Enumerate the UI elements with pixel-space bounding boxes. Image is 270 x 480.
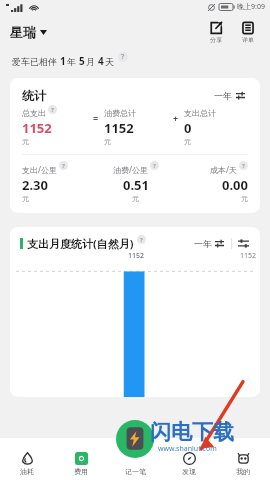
button[interactable]: 星瑞	[10, 22, 47, 42]
staticText: 闪电下载	[150, 419, 234, 445]
staticText: 元	[22, 194, 29, 203]
button[interactable]: 详单	[236, 21, 260, 44]
staticText: ?	[140, 236, 143, 244]
staticText: 0	[184, 119, 192, 137]
button[interactable]: 记一笔	[116, 420, 154, 458]
staticText: 4	[98, 54, 104, 68]
staticText: 元	[241, 194, 248, 203]
staticText: 成本/天	[210, 164, 237, 175]
staticText: 年	[67, 56, 76, 67]
staticText: 0.51	[123, 176, 149, 194]
staticText: 油费/公里	[113, 164, 148, 175]
staticText: 总支出	[22, 108, 46, 118]
staticText: ?	[51, 106, 54, 114]
staticText: =	[93, 112, 99, 124]
staticText: 费用	[74, 467, 88, 476]
staticText: www.shanlut.com	[158, 444, 217, 454]
staticText: ?	[242, 162, 245, 170]
staticText: 油费总计	[104, 108, 136, 118]
staticText: 我的	[236, 467, 250, 476]
button[interactable]: 筛选	[237, 237, 250, 250]
staticText: 元	[22, 137, 29, 146]
button[interactable]: 分享	[204, 21, 228, 44]
staticText: 元	[104, 137, 111, 146]
staticText: 一年	[214, 90, 232, 101]
staticText: 1152	[22, 119, 52, 137]
staticText: 天	[105, 56, 114, 67]
staticText: 油耗	[20, 467, 34, 476]
staticText: +	[173, 112, 179, 124]
staticText: 0.00	[222, 176, 248, 194]
button[interactable]: 费用	[54, 448, 108, 480]
button[interactable]: 油耗	[0, 448, 54, 480]
staticText: 元	[132, 194, 139, 203]
staticText: 支出总计	[184, 108, 216, 118]
staticText: 支出月度统计(自然月)	[27, 236, 134, 251]
staticText: 详单	[242, 36, 254, 44]
button[interactable]: 发现	[162, 448, 216, 480]
staticText: 1152	[128, 251, 145, 261]
staticText: 一年	[194, 238, 212, 249]
staticText: 1	[60, 54, 66, 68]
staticText: 支出/公里	[22, 164, 57, 175]
staticText: 5	[79, 54, 85, 68]
staticText: 发现	[182, 467, 196, 476]
staticText: 分享	[210, 36, 222, 44]
staticText: 星瑞	[10, 24, 36, 40]
staticText: 月	[86, 56, 95, 67]
staticText: 元	[184, 137, 191, 146]
staticText: 记一笔	[125, 467, 146, 476]
staticText: ?	[153, 162, 156, 170]
staticText: 1152	[240, 251, 257, 261]
button[interactable]: 一年	[192, 238, 226, 249]
staticText: ?	[62, 162, 65, 170]
staticText: 2.30	[22, 176, 48, 194]
staticText: 晚上9:09	[237, 2, 265, 12]
button[interactable]: 我的	[216, 448, 270, 480]
staticText: ?	[121, 52, 125, 62]
staticText: 统计	[22, 88, 46, 103]
staticText: 爱车已相伴	[12, 56, 57, 67]
staticText: 1152	[104, 119, 134, 137]
button[interactable]: 一年	[211, 87, 248, 104]
